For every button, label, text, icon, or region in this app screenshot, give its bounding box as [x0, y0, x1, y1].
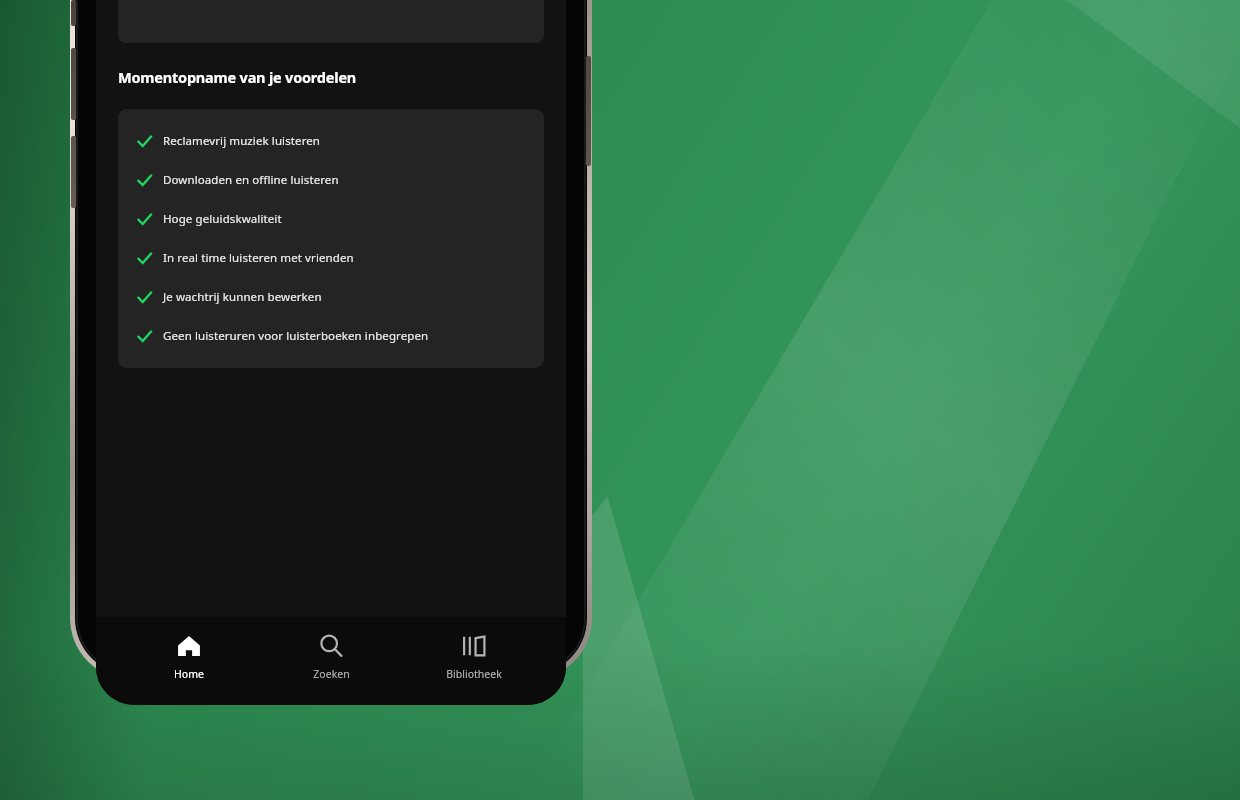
button[interactable]: Bibliotheek: [424, 627, 524, 687]
staticText: Reclamevrij muziek luisteren: [163, 133, 321, 149]
button[interactable]: Je wachtrij kunnen bewerken: [118, 289, 544, 305]
other: Bibliotheek: [461, 633, 487, 659]
staticText: Je wachtrij kunnen bewerken: [163, 289, 322, 305]
staticText: In real time luisteren met vrienden: [163, 250, 354, 266]
button[interactable]: Reclamevrij muziek luisteren: [118, 133, 544, 149]
button[interactable]: Geen luisteruren voor luisterboeken inbe…: [118, 328, 544, 344]
button[interactable]: Home: [139, 627, 239, 687]
button[interactable]: Downloaden en offline luisteren: [118, 172, 544, 188]
staticText: Zoeken: [313, 667, 350, 681]
staticText: Momentopname van je voordelen: [118, 67, 357, 87]
staticText: Downloaden en offline luisteren: [163, 172, 339, 188]
staticText: Home: [174, 667, 204, 681]
other: Home: [176, 633, 202, 659]
staticText: Hoge geluidskwaliteit: [163, 211, 282, 227]
other: Zoeken: [318, 633, 344, 659]
button[interactable]: Hoge geluidskwaliteit: [118, 211, 544, 227]
staticText: Bibliotheek: [446, 667, 502, 681]
staticText: Geen luisteruren voor luisterboeken inbe…: [163, 328, 429, 344]
button[interactable]: Zoeken: [281, 627, 381, 687]
button[interactable]: In real time luisteren met vrienden: [118, 250, 544, 266]
